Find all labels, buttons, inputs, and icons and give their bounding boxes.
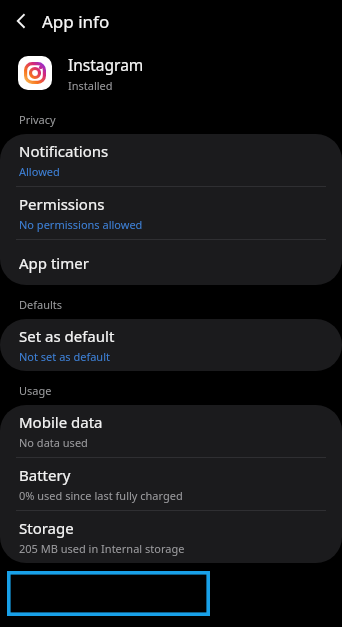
staticText: Storage bbox=[19, 518, 74, 538]
staticText: App info bbox=[42, 10, 110, 33]
button[interactable]: Back bbox=[0, 0, 42, 42]
staticText: Defaults bbox=[19, 297, 63, 312]
button[interactable]: Battery bbox=[0, 458, 342, 510]
staticText: App timer bbox=[19, 253, 89, 273]
staticText: Privacy bbox=[19, 112, 56, 127]
staticText: Notifications bbox=[19, 141, 109, 161]
button[interactable]: Permissions bbox=[0, 187, 342, 239]
staticText: 0% used since last fully charged bbox=[19, 488, 183, 503]
staticText: Usage bbox=[19, 383, 52, 398]
button[interactable]: Mobile data bbox=[0, 405, 342, 457]
button[interactable]: Instagram bbox=[0, 42, 342, 104]
staticText: Instagram bbox=[68, 54, 144, 75]
staticText: Battery bbox=[19, 465, 71, 485]
staticText: No permissions allowed bbox=[19, 217, 143, 232]
button[interactable]: Set as default bbox=[0, 319, 342, 371]
button[interactable]: App timer bbox=[0, 240, 342, 285]
staticText: 205 MB used in Internal storage bbox=[19, 541, 185, 556]
staticText: Allowed bbox=[19, 164, 60, 179]
staticText: Mobile data bbox=[19, 412, 103, 432]
staticText: Not set as default bbox=[19, 349, 110, 364]
staticText: No data used bbox=[19, 435, 88, 450]
staticText: Permissions bbox=[19, 194, 105, 214]
button[interactable]: Storage bbox=[0, 511, 342, 563]
staticText: Installed bbox=[68, 78, 113, 93]
staticText: Set as default bbox=[19, 326, 115, 346]
button[interactable]: Notifications bbox=[0, 134, 342, 186]
button[interactable]: Storage highlighted bbox=[7, 571, 210, 616]
